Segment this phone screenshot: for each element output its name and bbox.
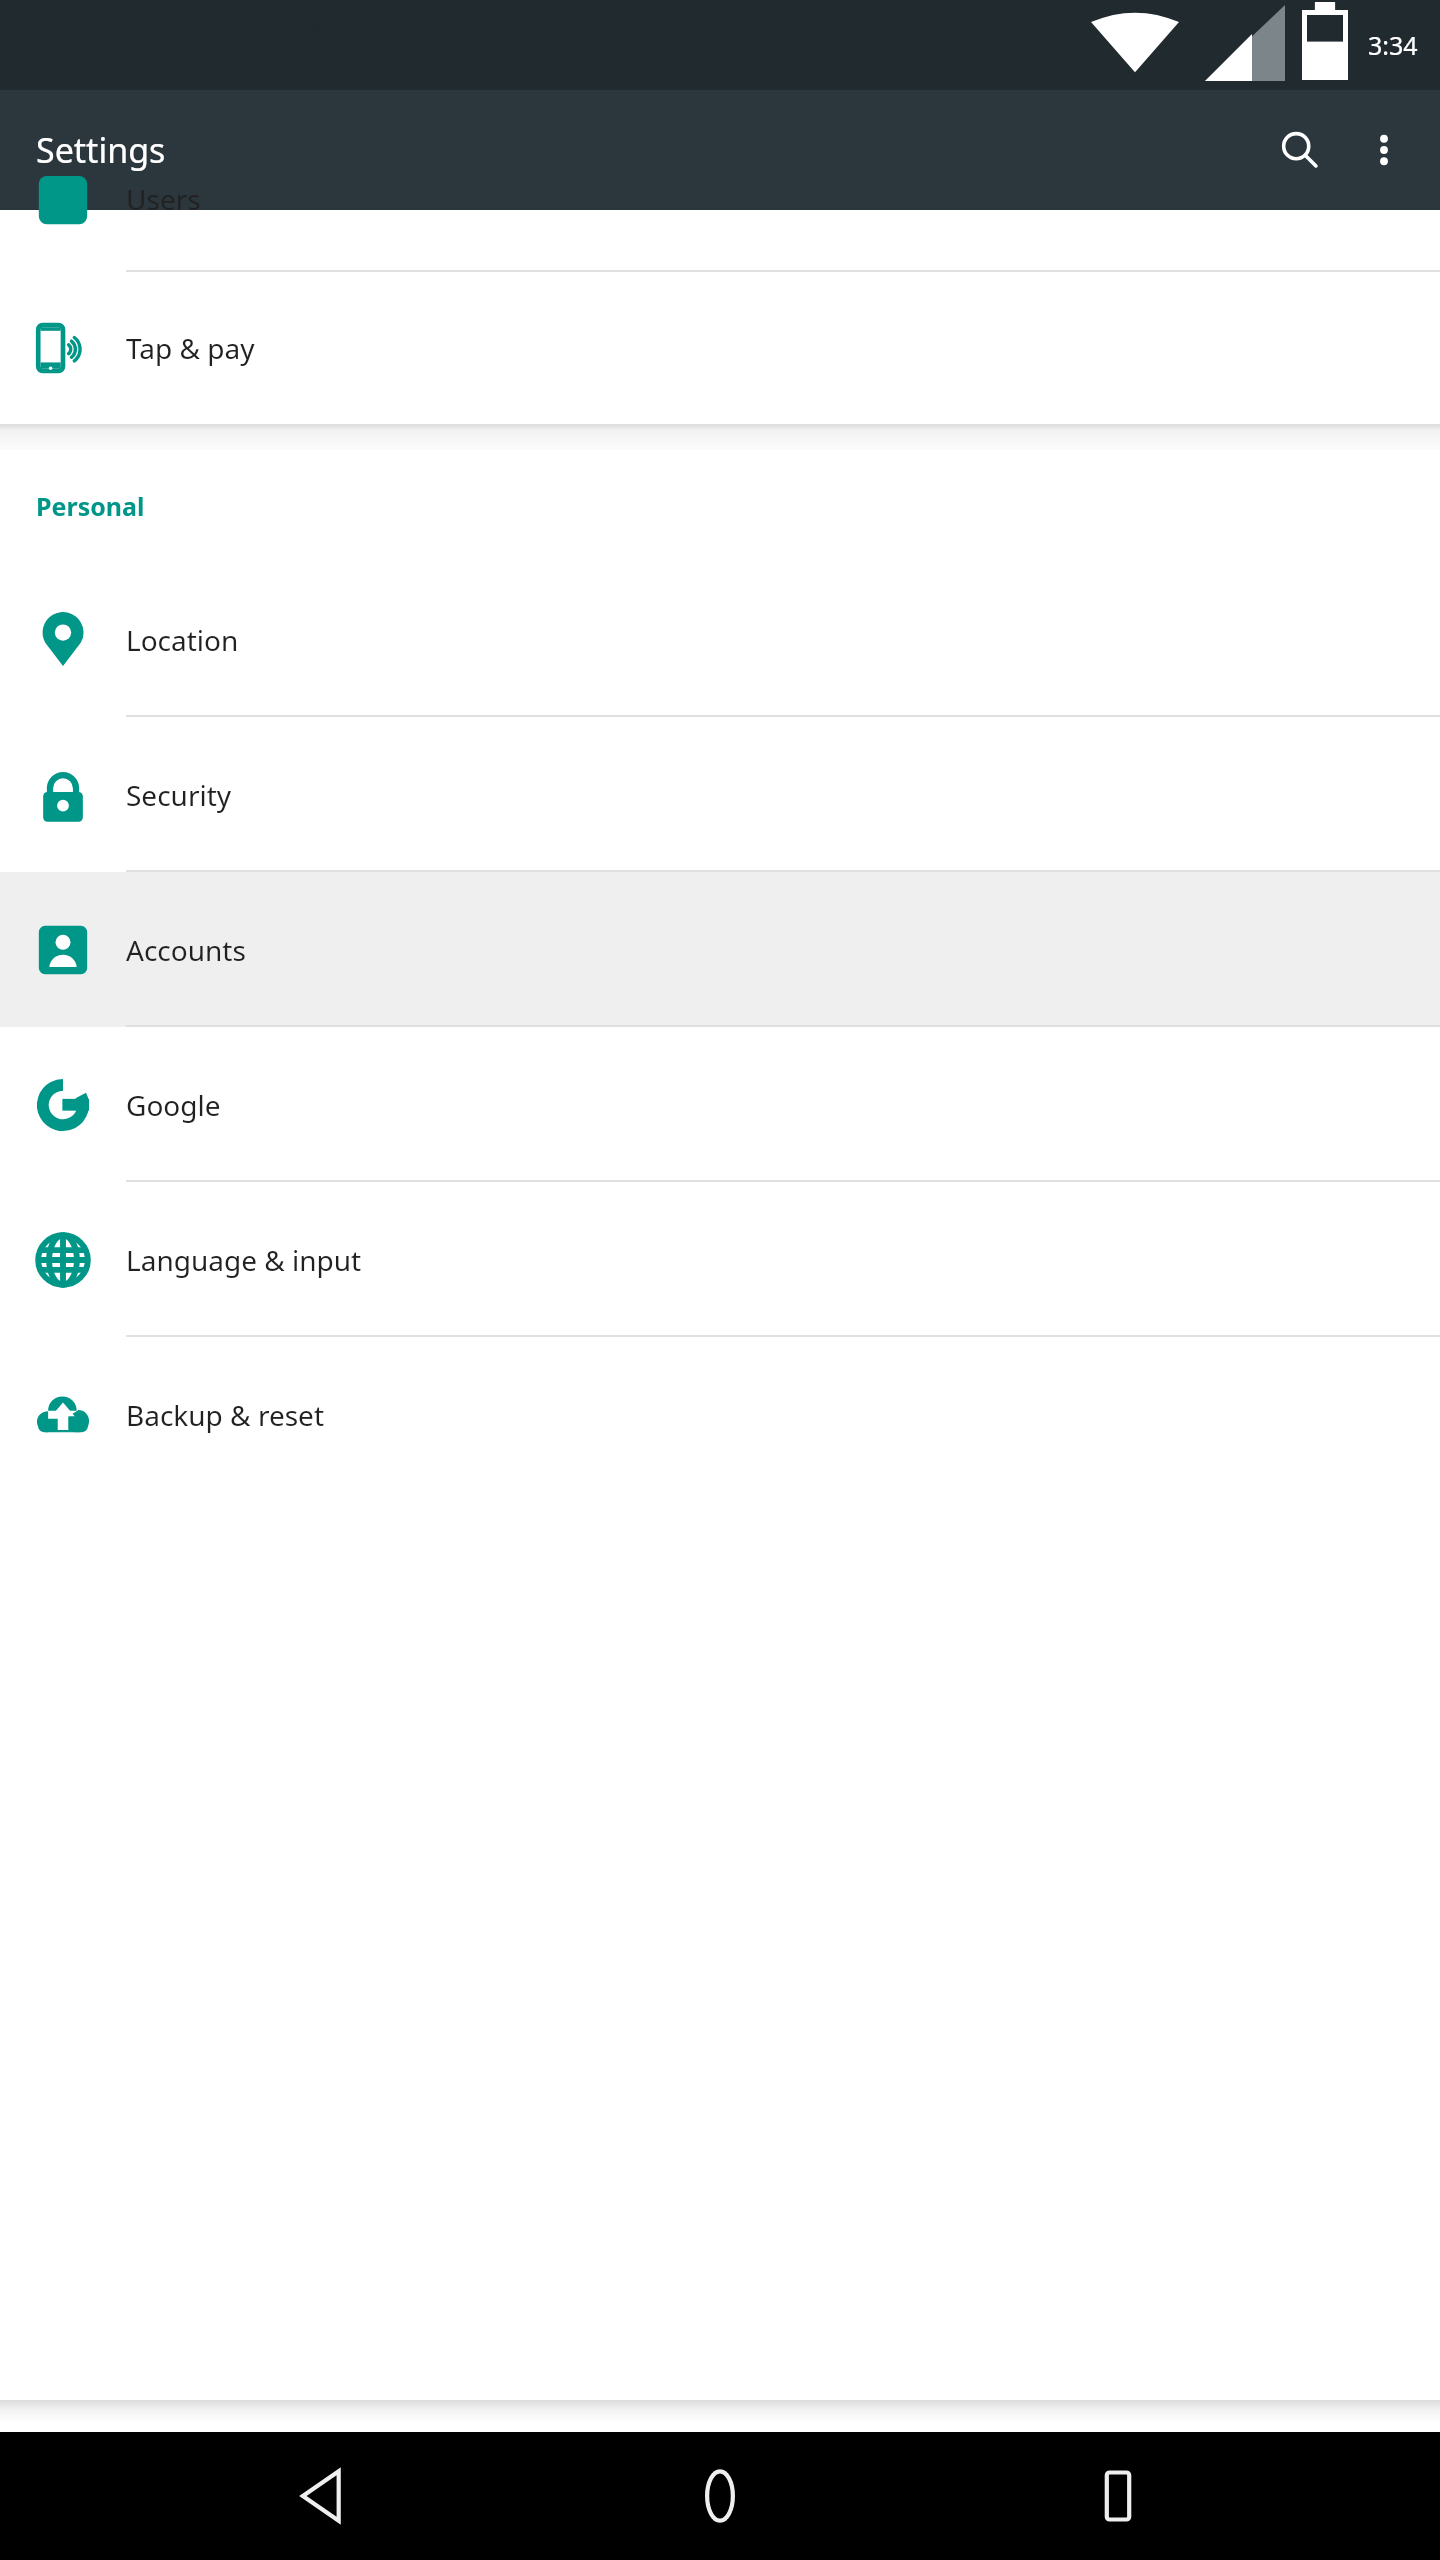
staticText: 3:34 bbox=[1368, 28, 1418, 62]
button[interactable]: Backup & reset bbox=[0, 1337, 1440, 1492]
button[interactable]: Home bbox=[645, 2432, 795, 2560]
button[interactable]: Back bbox=[248, 2432, 398, 2560]
staticText: Security bbox=[126, 776, 232, 814]
button[interactable]: Tap & pay bbox=[0, 272, 1440, 424]
staticText: Tap & pay bbox=[126, 329, 255, 367]
button[interactable]: Recent apps bbox=[1043, 2432, 1193, 2560]
button[interactable]: Search bbox=[1258, 108, 1342, 192]
staticText: Language & input bbox=[126, 1241, 362, 1279]
staticText: Google bbox=[126, 1086, 221, 1124]
button[interactable]: More options bbox=[1342, 108, 1426, 192]
button[interactable]: Location bbox=[0, 562, 1440, 717]
button[interactable]: Accounts bbox=[0, 872, 1440, 1027]
staticText: Accounts bbox=[126, 931, 246, 969]
staticText: Settings bbox=[36, 127, 166, 173]
button[interactable]: Google bbox=[0, 1027, 1440, 1182]
button[interactable]: Security bbox=[0, 717, 1440, 872]
staticText: Backup & reset bbox=[126, 1396, 324, 1434]
staticText: Users bbox=[126, 180, 201, 218]
staticText: Personal bbox=[36, 489, 145, 523]
button[interactable]: Language & input bbox=[0, 1182, 1440, 1337]
staticText: Location bbox=[126, 621, 239, 659]
